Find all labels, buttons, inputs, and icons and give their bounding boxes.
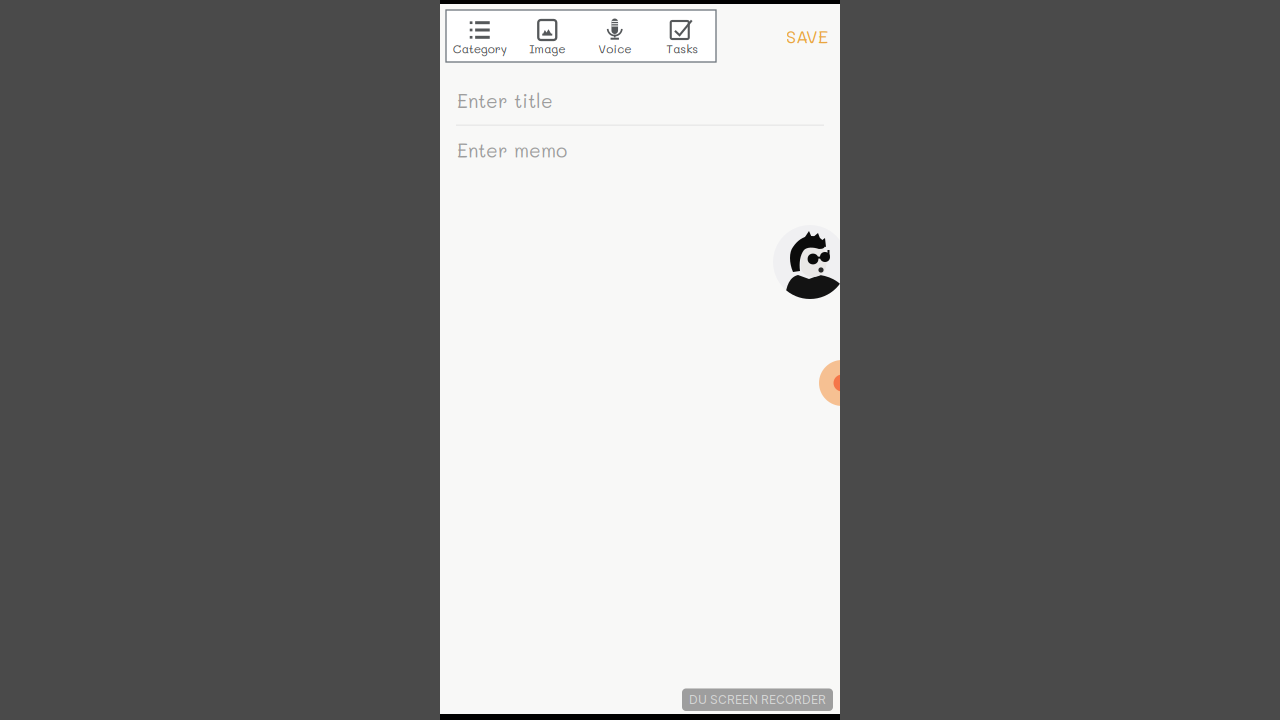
staticText: Tasks (666, 41, 698, 56)
staticText: Image (529, 41, 565, 56)
staticText: Enter title (457, 88, 553, 113)
staticText: Voice (598, 41, 631, 56)
button[interactable]: Category (446, 10, 513, 62)
staticText: SAVE (786, 24, 828, 48)
button[interactable]: Record (819, 360, 865, 406)
button[interactable]: Front camera overlay (773, 225, 847, 299)
button[interactable]: Enter title (440, 62, 840, 125)
button[interactable]: Tasks (648, 10, 716, 62)
staticText: DU SCREEN RECORDER (689, 692, 826, 707)
button[interactable]: SAVE (772, 10, 842, 62)
button[interactable]: Image (513, 10, 581, 62)
button[interactable]: Enter memo (440, 126, 840, 172)
button[interactable]: Voice (581, 10, 648, 62)
staticText: Category (453, 41, 507, 56)
staticText: Enter memo (457, 138, 567, 162)
